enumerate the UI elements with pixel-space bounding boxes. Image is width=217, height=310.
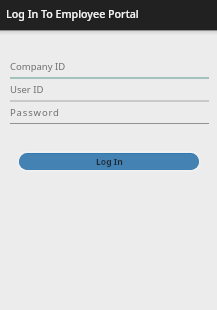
button[interactable]: Password <box>0 100 217 126</box>
button[interactable]: Log In <box>19 153 199 170</box>
staticText: User ID <box>10 83 44 96</box>
button[interactable]: User ID <box>0 77 217 103</box>
button[interactable]: Company ID <box>0 54 217 80</box>
staticText: Password <box>10 106 60 119</box>
staticText: Log In <box>96 156 123 168</box>
staticText: Log In To Employee Portal <box>6 7 139 22</box>
staticText: Company ID <box>10 60 66 73</box>
